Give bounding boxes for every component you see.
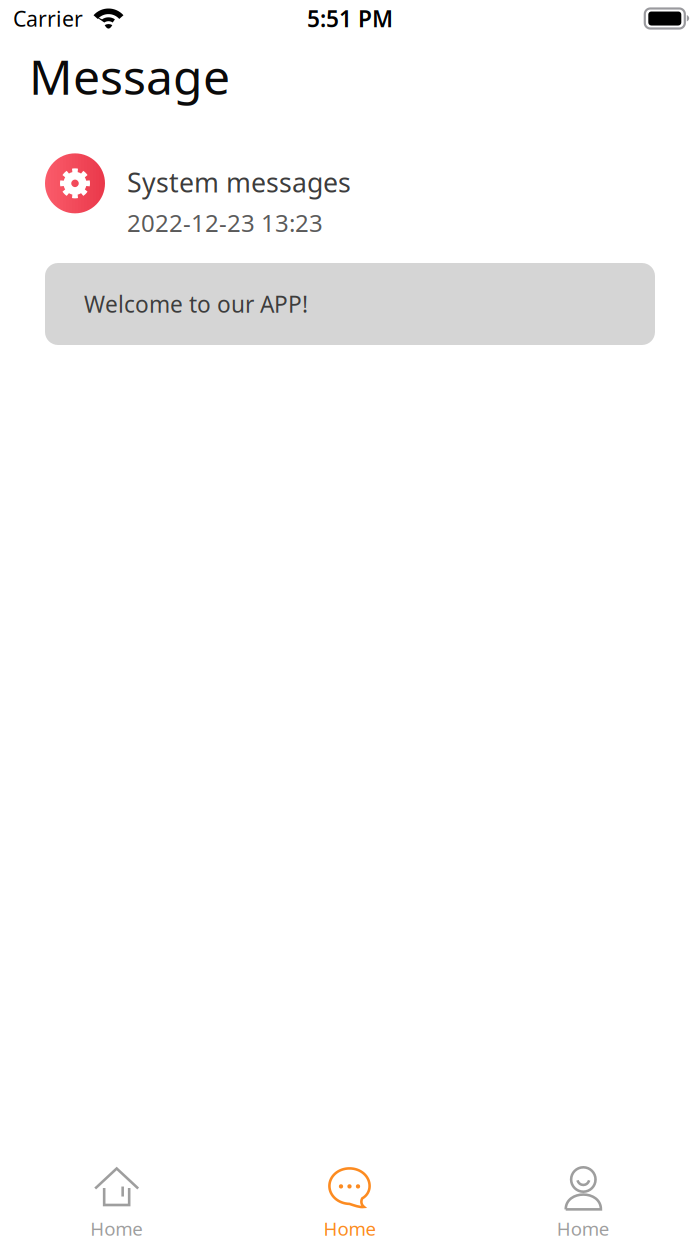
- staticText: System messages: [127, 164, 351, 200]
- staticText: Home: [323, 1216, 376, 1241]
- staticText: Home: [90, 1216, 143, 1241]
- staticText: 2022-12-23 13:23: [127, 207, 323, 239]
- button[interactable]: Home: [233, 1150, 467, 1244]
- staticText: Welcome to our APP!: [84, 289, 308, 319]
- staticText: Carrier: [13, 4, 83, 33]
- staticText: Home: [557, 1216, 610, 1241]
- button[interactable]: Home: [0, 1150, 233, 1244]
- staticText: Message: [29, 44, 230, 108]
- button[interactable]: System messages: [0, 108, 700, 345]
- button[interactable]: Home: [467, 1150, 700, 1244]
- staticText: 5:51 PM: [307, 3, 393, 33]
